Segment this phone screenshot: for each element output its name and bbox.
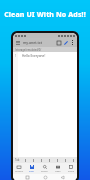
staticText: Tab xyxy=(15,158,20,162)
button[interactable]: Menu xyxy=(15,40,21,46)
button[interactable] xyxy=(45,157,53,163)
staticText: my.anet.txt xyxy=(23,40,43,45)
button[interactable]: Recents xyxy=(24,174,31,180)
staticText: Save xyxy=(29,170,34,173)
staticText: Hello Everyone! xyxy=(22,54,46,58)
staticText: Share xyxy=(68,170,74,173)
staticText: /storage/emulated/0/ xyxy=(15,48,42,52)
button[interactable]: Home xyxy=(42,174,49,180)
button[interactable] xyxy=(22,157,29,163)
button[interactable]: Search xyxy=(38,163,51,174)
button[interactable]: Tab xyxy=(13,157,22,163)
button[interactable] xyxy=(37,157,45,163)
button[interactable]: Save xyxy=(56,40,62,46)
button[interactable] xyxy=(29,157,37,163)
staticText: Search xyxy=(41,170,48,173)
button[interactable]: Share xyxy=(64,163,77,174)
button[interactable]: Save xyxy=(25,163,38,174)
staticText: Clean UI With No Ads!! xyxy=(4,10,86,20)
button[interactable]: Open xyxy=(51,163,64,174)
button[interactable]: Toolbox xyxy=(13,163,25,174)
button[interactable] xyxy=(53,157,61,163)
button[interactable] xyxy=(69,157,77,163)
button[interactable]: Edit xyxy=(63,40,69,46)
staticText: 1 xyxy=(15,54,17,58)
button[interactable]: Back xyxy=(59,174,66,180)
staticText: Toolbox xyxy=(15,170,24,173)
button[interactable]: /storage/emulated/0/ xyxy=(13,47,77,52)
button[interactable]: More options xyxy=(70,40,75,45)
staticText: Open xyxy=(55,170,61,173)
button[interactable] xyxy=(61,157,69,163)
